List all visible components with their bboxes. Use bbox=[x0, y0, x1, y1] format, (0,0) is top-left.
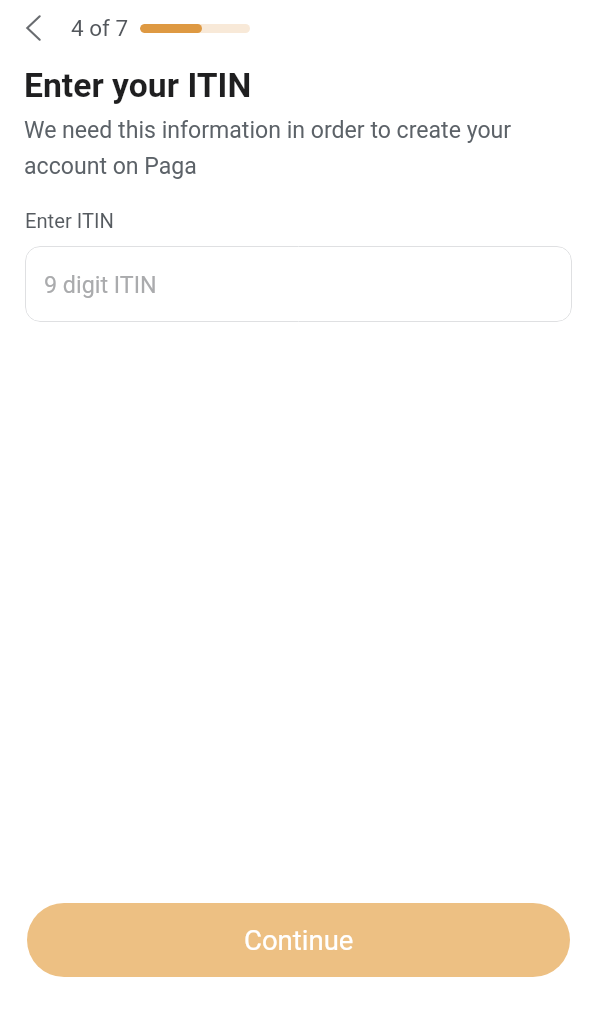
staticText: 4 of 7 bbox=[71, 15, 129, 41]
button[interactable]: 9 digit ITIN bbox=[25, 246, 572, 322]
staticText: We need this information in order to cre… bbox=[24, 117, 529, 180]
staticText: Continue bbox=[244, 924, 354, 956]
staticText: Enter your ITIN bbox=[24, 66, 252, 105]
staticText: Enter ITIN bbox=[25, 209, 114, 233]
button[interactable]: Continue bbox=[27, 903, 570, 977]
staticText: 9 digit ITIN bbox=[44, 271, 157, 298]
button[interactable]: Back bbox=[16, 11, 50, 45]
